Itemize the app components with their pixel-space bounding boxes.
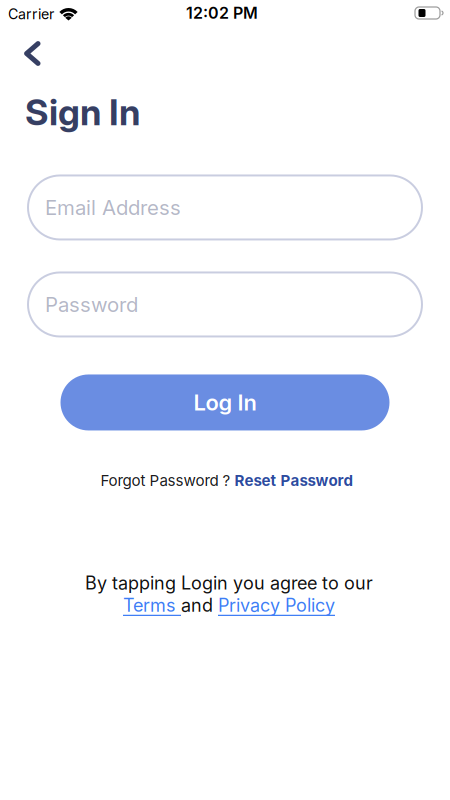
button[interactable]: Reset Password — [234, 471, 353, 489]
staticText: Email Address — [45, 195, 181, 219]
staticText: Password — [45, 292, 138, 316]
staticText: Privacy Policy — [218, 594, 335, 616]
button[interactable] — [0, 26, 41, 66]
button[interactable]: Terms — [123, 594, 181, 616]
staticText: Reset Password — [234, 471, 353, 489]
staticText: 12:02 PM — [186, 4, 258, 22]
button[interactable]: Log In — [60, 374, 389, 430]
staticText: Forgot Password ? — [100, 471, 234, 489]
staticText: Carrier — [8, 6, 54, 22]
staticText: and — [181, 594, 218, 616]
staticText: By tapping Login you agree to our — [85, 572, 373, 593]
staticText: Sign In — [25, 91, 140, 133]
button[interactable]: Privacy Policy — [218, 594, 335, 616]
staticText: Log In — [193, 389, 256, 415]
staticText: Terms — [123, 594, 181, 616]
